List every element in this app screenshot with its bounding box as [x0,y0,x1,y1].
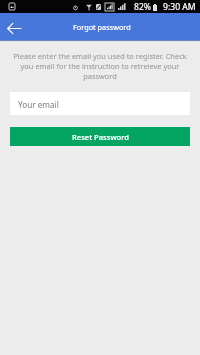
button[interactable]: Your email [10,92,190,115]
button[interactable]: Navigate up [0,13,26,40]
staticText: Forgot password [73,22,131,32]
staticText: 82% [134,1,151,13]
staticText: Reset Password [72,132,129,142]
button[interactable]: Reset Password [10,127,190,146]
staticText: 9:30 AM [163,1,196,13]
staticText: Please enter the email you used to regis… [0,51,200,81]
staticText: Your email [18,99,59,110]
